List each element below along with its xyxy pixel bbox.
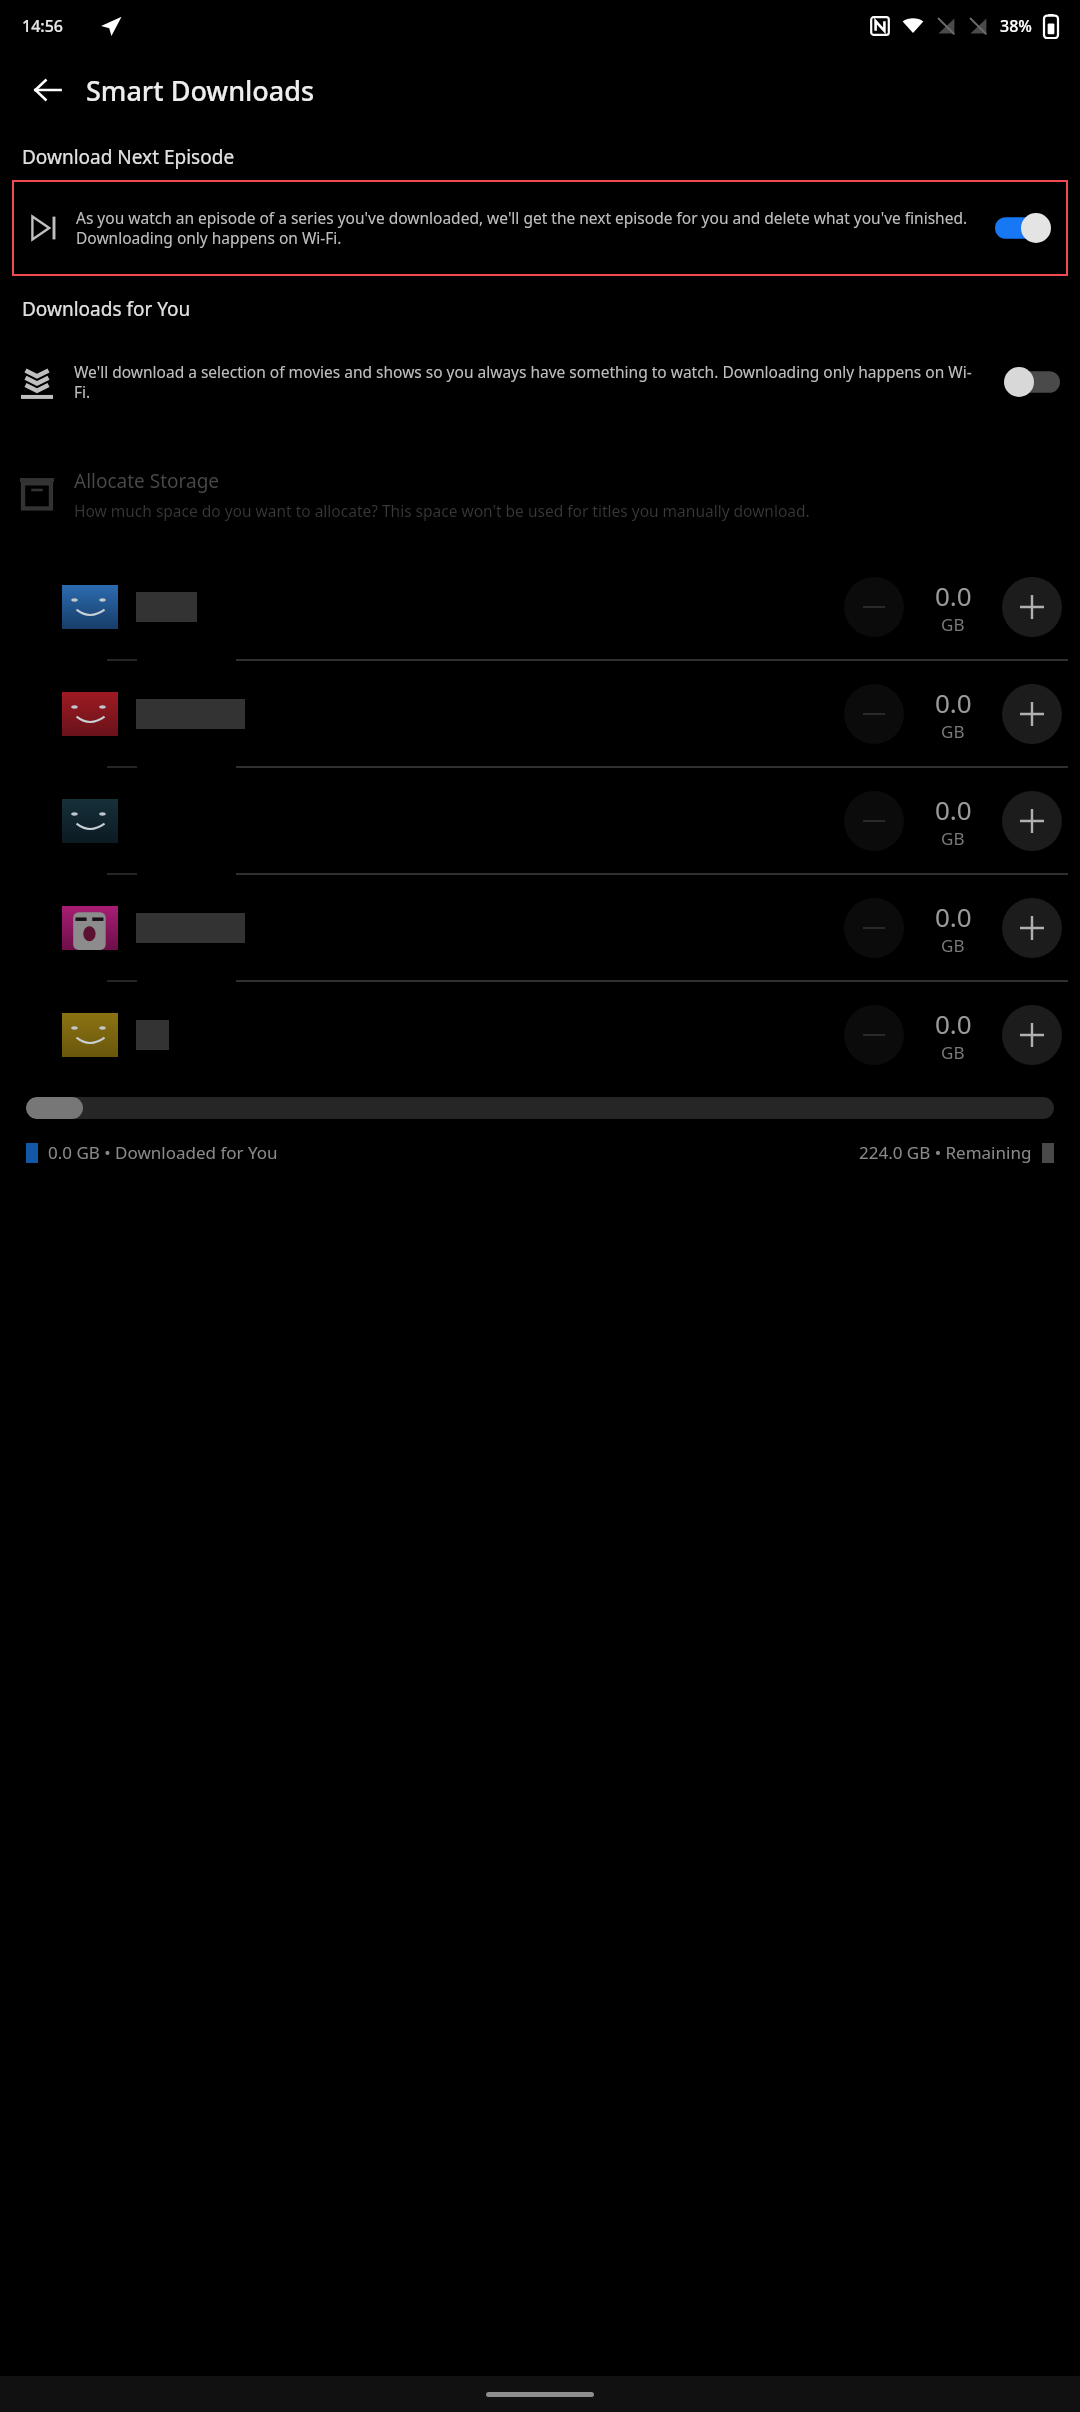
button[interactable]: We'll download a selection of movies and…: [0, 336, 1080, 428]
staticText: 0.0: [935, 792, 972, 827]
button[interactable]: Decrease: [0, 982, 1080, 1087]
button[interactable]: Decrease: [844, 791, 904, 851]
staticText: 14:56: [22, 15, 63, 37]
button[interactable]: Downloads for you toggle: [984, 336, 1080, 428]
staticText: 0.0: [935, 578, 972, 613]
button[interactable]: Increase: [1002, 791, 1062, 851]
button[interactable]: Increase: [1002, 684, 1062, 744]
button[interactable]: Decrease: [844, 898, 904, 958]
staticText: Allocate Storage: [74, 468, 220, 494]
staticText: GB: [941, 827, 965, 850]
staticText: GB: [941, 1041, 965, 1064]
staticText: Downloads for You: [22, 296, 191, 322]
button[interactable]: Increase: [1002, 898, 1062, 958]
staticText: As you watch an episode of a series you'…: [76, 207, 980, 249]
button[interactable]: Decrease: [844, 577, 904, 637]
staticText: We'll download a selection of movies and…: [74, 361, 984, 403]
button[interactable]: Decrease: [0, 661, 1080, 766]
staticText: GB: [941, 934, 965, 957]
staticText: Download Next Episode: [22, 144, 235, 170]
button[interactable]: Decrease: [0, 875, 1080, 980]
button[interactable]: Increase: [1002, 577, 1062, 637]
staticText: Smart Downloads: [86, 72, 315, 109]
staticText: 224.0 GB • Remaining: [859, 1141, 1032, 1164]
button[interactable]: As you watch an episode of a series you'…: [14, 182, 1066, 274]
button[interactable]: Decrease: [844, 1005, 904, 1065]
button[interactable]: Back: [24, 66, 72, 114]
button[interactable]: Decrease: [844, 684, 904, 744]
button[interactable]: Download next episode toggle: [980, 182, 1066, 274]
staticText: GB: [941, 613, 965, 636]
staticText: 0.0: [935, 685, 972, 720]
button[interactable]: Decrease: [0, 768, 1080, 873]
button[interactable]: Increase: [1002, 1005, 1062, 1065]
staticText: GB: [941, 720, 965, 743]
staticText: How much space do you want to allocate? …: [74, 500, 810, 521]
staticText: 0.0 GB • Downloaded for You: [48, 1141, 278, 1164]
button[interactable]: Decrease: [0, 554, 1080, 659]
staticText: 0.0: [935, 899, 972, 934]
staticText: 0.0: [935, 1006, 972, 1041]
staticText: 38%: [1000, 15, 1032, 37]
